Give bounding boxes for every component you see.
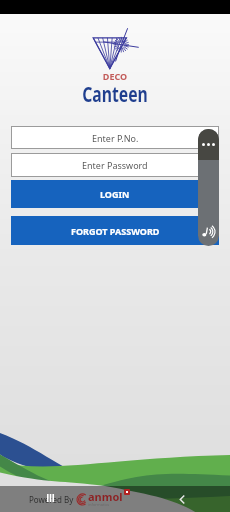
button[interactable]: Floating recorder controls [198,129,219,246]
staticText: LOGIN [100,188,130,200]
staticText: Enter Password [82,159,148,171]
button[interactable]: Enter P.No. [11,126,219,149]
button[interactable]: FORGOT PASSWORD [11,216,219,245]
button[interactable]: Enter Password [11,153,219,177]
button[interactable]: Back [172,489,192,509]
staticText: FORGOT PASSWORD [71,225,160,237]
staticText: Powered By [29,494,74,505]
staticText: Enter P.No. [92,132,139,144]
button[interactable]: LOGIN [11,180,219,208]
staticText: Canteen [29,80,201,109]
staticText: anmol [88,489,123,504]
staticText: DECO [0,70,230,82]
staticText: informatics [88,502,110,507]
